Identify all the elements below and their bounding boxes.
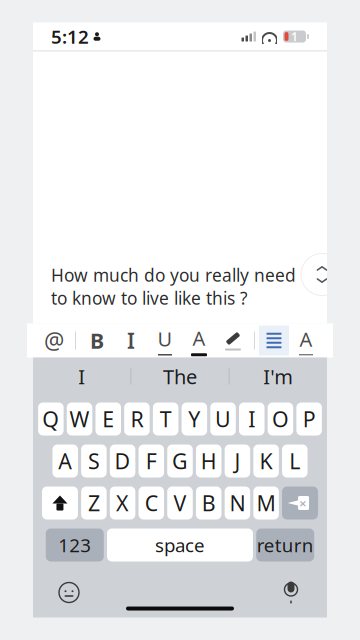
staticText: How much do you really need to know to l… (51, 263, 296, 309)
button[interactable]: Dictate (271, 575, 311, 609)
button[interactable]: 123 (46, 528, 104, 561)
staticText: X (116, 489, 129, 517)
staticText: F (146, 447, 157, 475)
staticText: return (257, 533, 314, 557)
staticText: Q (42, 405, 59, 433)
staticText: J (234, 447, 240, 475)
button[interactable]: Text color (182, 325, 216, 355)
button[interactable]: Q (38, 402, 64, 435)
button[interactable]: Text style (289, 325, 323, 355)
button[interactable]: W (67, 402, 92, 435)
staticText: G (172, 447, 188, 475)
staticText: L (289, 447, 300, 475)
staticText: space (155, 533, 205, 557)
staticText: 123 (58, 533, 91, 557)
button[interactable]: Mention (37, 325, 71, 355)
staticText: I (127, 326, 135, 355)
staticText: × (299, 494, 307, 512)
staticText: U (157, 325, 172, 352)
staticText: B (202, 489, 216, 517)
button[interactable]: C (139, 486, 164, 519)
button[interactable]: Previous or next (301, 253, 343, 295)
button[interactable]: G (167, 444, 193, 477)
button[interactable]: Highlight (216, 325, 250, 355)
button[interactable]: N (225, 486, 250, 519)
staticText: B (90, 326, 104, 355)
button[interactable]: E (95, 402, 121, 435)
button[interactable]: I (33, 357, 130, 395)
button[interactable]: L (282, 444, 307, 477)
staticText: H (201, 447, 217, 475)
button[interactable]: Bold (80, 325, 114, 355)
staticText: N (229, 489, 245, 517)
button[interactable]: F (139, 444, 164, 477)
staticText: R (130, 405, 143, 433)
staticText: U (215, 405, 231, 433)
staticText: K (260, 447, 273, 475)
staticText: P (303, 405, 316, 433)
staticText: T (160, 405, 172, 433)
button[interactable]: M (253, 486, 279, 519)
staticText: A (299, 326, 312, 352)
button[interactable]: space (107, 528, 253, 561)
staticText: I (78, 363, 85, 390)
button[interactable]: K (253, 444, 279, 477)
staticText: C (145, 489, 158, 517)
staticText: D (115, 447, 131, 475)
button[interactable]: A (52, 444, 78, 477)
staticText: The (163, 363, 197, 390)
staticText: E (102, 405, 114, 433)
button[interactable]: I (239, 402, 264, 435)
staticText: @ (44, 325, 64, 355)
button[interactable]: R (124, 402, 150, 435)
staticText: 5:12 (51, 24, 89, 49)
button[interactable]: T (153, 402, 178, 435)
staticText: A (58, 447, 72, 475)
button[interactable]: The (131, 357, 229, 395)
button[interactable]: V (167, 486, 193, 519)
button[interactable]: return (256, 528, 314, 561)
button[interactable]: Italic (114, 325, 148, 355)
staticText: I (248, 405, 255, 433)
staticText: W (69, 405, 89, 433)
button[interactable]: X (110, 486, 135, 519)
button[interactable]: O (268, 402, 293, 435)
button[interactable]: P (296, 402, 322, 435)
button[interactable]: Alignment (259, 325, 289, 355)
button[interactable]: Underline (148, 325, 182, 355)
button[interactable]: Emoji (49, 575, 89, 609)
staticText: Y (188, 405, 200, 433)
button[interactable]: Z (81, 486, 107, 519)
button[interactable]: I'm (230, 357, 327, 395)
button[interactable]: J (225, 444, 250, 477)
button[interactable]: H (196, 444, 221, 477)
button[interactable]: S (81, 444, 107, 477)
button[interactable]: Y (182, 402, 207, 435)
staticText: A (192, 325, 205, 351)
button[interactable]: Shift (42, 486, 78, 519)
button[interactable]: D (110, 444, 135, 477)
staticText: V (173, 489, 186, 517)
button[interactable]: U (210, 402, 236, 435)
button[interactable]: B (196, 486, 221, 519)
staticText: S (88, 447, 100, 475)
staticText: 1 (291, 28, 298, 44)
staticText: M (257, 489, 276, 517)
staticText: O (272, 405, 289, 433)
button[interactable]: Delete (282, 486, 318, 519)
staticText: I'm (263, 363, 293, 390)
staticText: Z (88, 489, 100, 517)
